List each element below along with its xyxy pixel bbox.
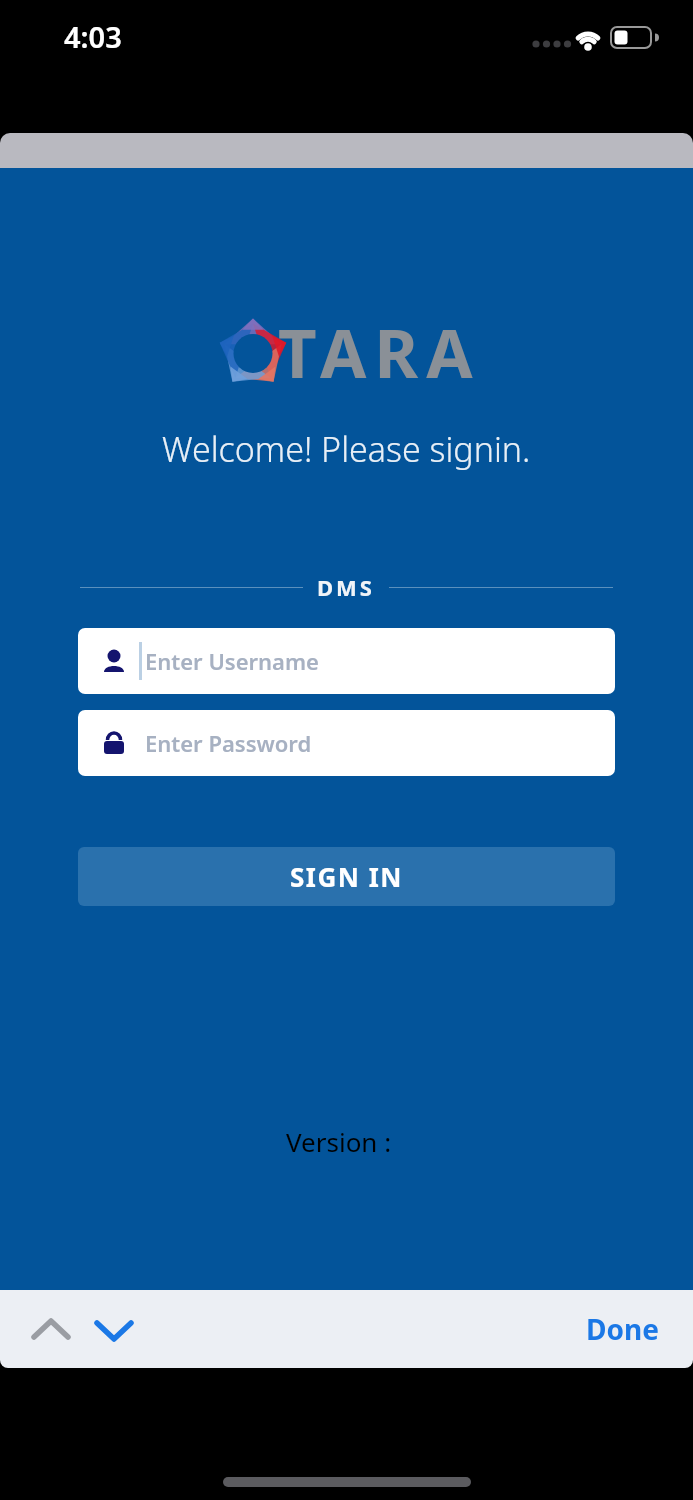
staticText: TARA: [278, 306, 481, 397]
button[interactable]: Enter Username: [78, 628, 615, 694]
button[interactable]: SIGN IN: [78, 847, 615, 906]
button[interactable]: Enter Password: [78, 710, 615, 776]
staticText: SIGN IN: [290, 859, 403, 894]
staticText: Version :: [286, 1124, 392, 1159]
staticText: Enter Username: [145, 646, 319, 676]
staticText: Done: [586, 1310, 659, 1348]
staticText: 4:03: [64, 17, 122, 56]
button[interactable]: Done: [586, 1310, 659, 1348]
staticText: Welcome! Please signin.: [162, 426, 531, 472]
staticText: DMS: [317, 572, 375, 602]
staticText: Enter Password: [145, 728, 312, 758]
